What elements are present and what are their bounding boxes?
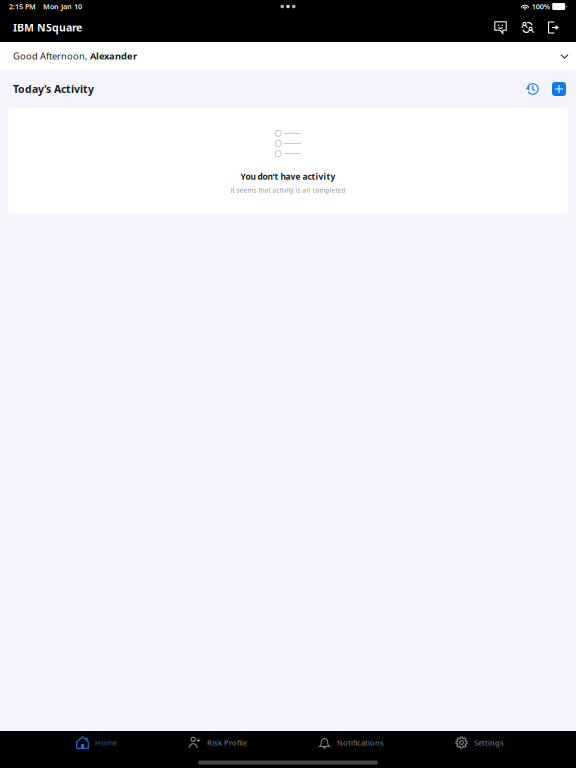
staticText: Home (95, 737, 117, 747)
button[interactable]: Good Afternoon, (0, 42, 576, 70)
staticText: Good Afternoon, (13, 50, 90, 62)
staticText: Today's Activity (13, 82, 94, 96)
button[interactable]: Messages (487, 17, 514, 37)
staticText: Alexander (90, 50, 137, 62)
staticText: It seems that activity is all completed (230, 186, 345, 194)
button[interactable]: Activity history (517, 78, 547, 100)
button[interactable]: Add activity (547, 78, 571, 100)
staticText: IBM NSquare (13, 20, 82, 34)
staticText: Settings (474, 737, 504, 747)
staticText: You don't have activity (240, 171, 335, 182)
button[interactable]: Risk Profile (188, 731, 247, 753)
button[interactable]: Home (76, 731, 117, 753)
button[interactable]: Switch user (514, 17, 541, 37)
staticText: 2:15 PM (9, 2, 36, 11)
staticText: Risk Profile (207, 737, 247, 747)
button[interactable]: Log out (541, 17, 566, 37)
staticText: 100% (532, 2, 550, 11)
staticText: Mon Jan 10 (43, 2, 82, 11)
button[interactable]: Notifications (318, 731, 384, 753)
staticText: Notifications (337, 737, 384, 747)
button[interactable]: Settings (455, 731, 504, 753)
